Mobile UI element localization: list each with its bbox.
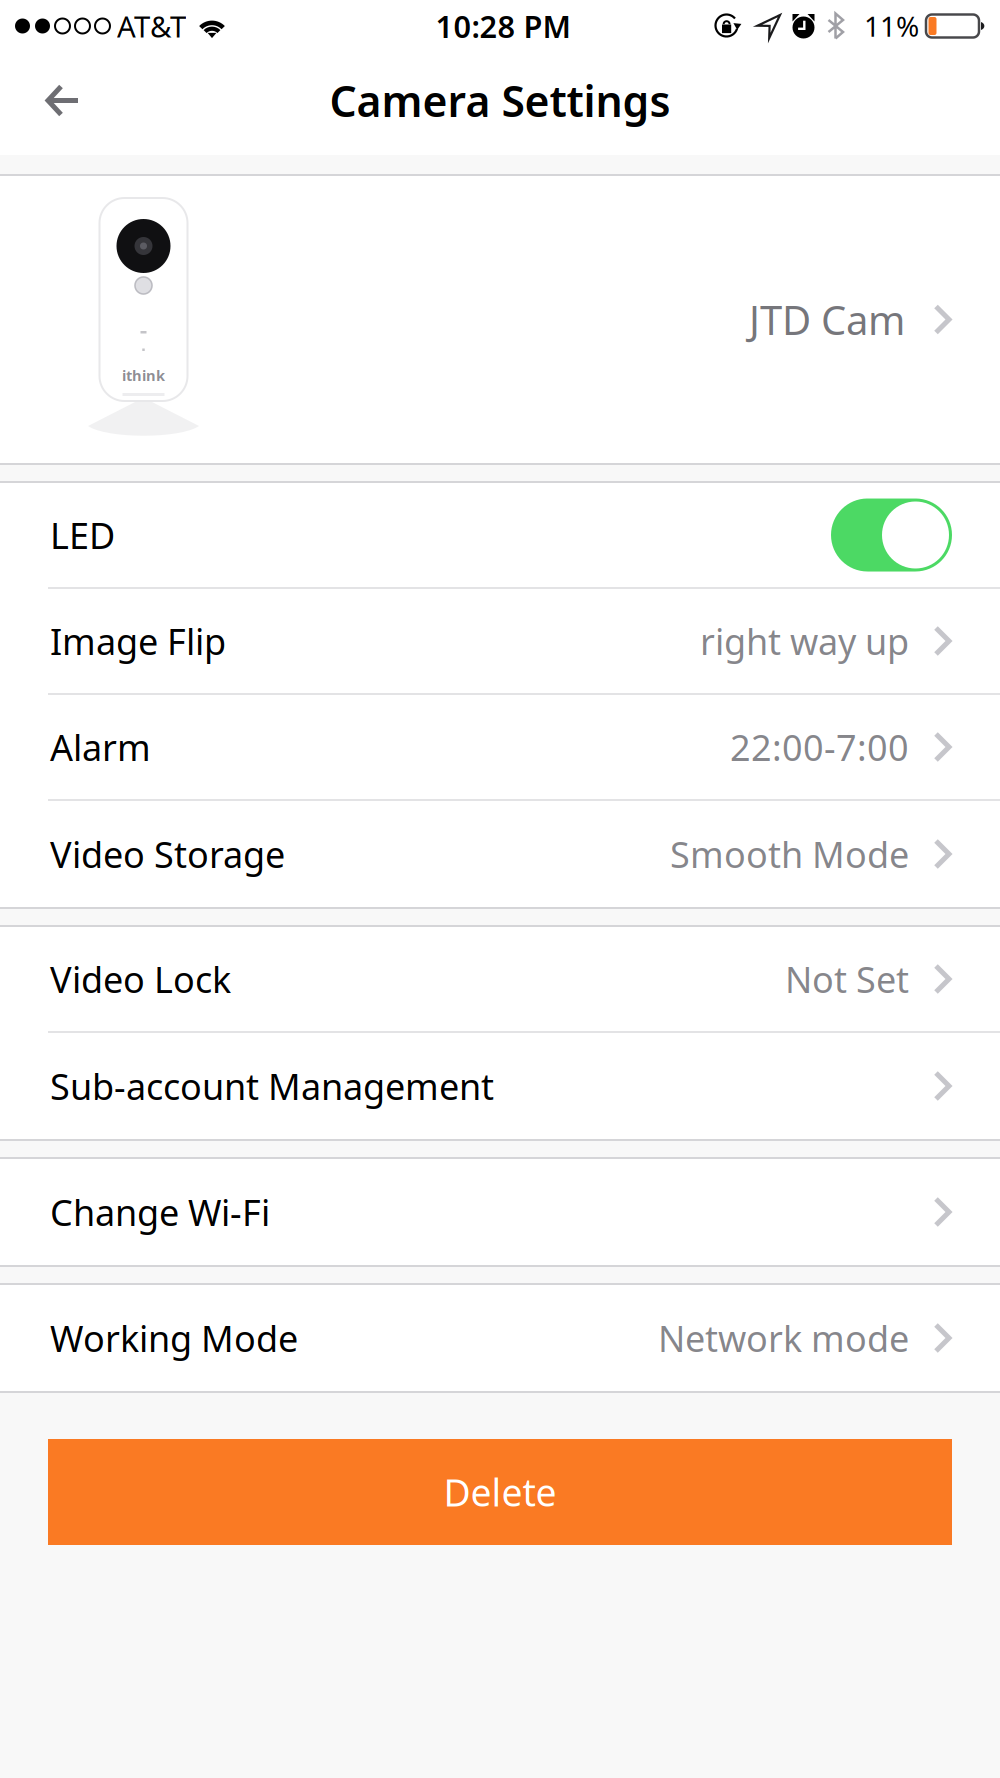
- staticText: Working Mode: [50, 1314, 298, 1362]
- staticText: Change Wi-Fi: [50, 1188, 270, 1236]
- button[interactable]: LED on: [831, 498, 952, 571]
- staticText: right way up: [700, 617, 909, 665]
- staticText: Camera Settings: [329, 72, 670, 129]
- staticText: Smooth Mode: [670, 830, 909, 878]
- staticText: LED: [50, 511, 115, 559]
- button[interactable]: ithink: [0, 176, 1000, 463]
- button[interactable]: Sub-account Management: [0, 1033, 1000, 1139]
- staticText: Image Flip: [50, 617, 226, 665]
- staticText: JTD Cam: [749, 293, 905, 346]
- staticText: Not Set: [785, 955, 909, 1003]
- staticText: AT&T: [117, 6, 186, 45]
- button[interactable]: Video Lock: [0, 927, 1000, 1033]
- button[interactable]: Back: [0, 52, 104, 155]
- staticText: Sub-account Management: [50, 1062, 494, 1110]
- staticText: Network mode: [658, 1314, 909, 1362]
- button[interactable]: Alarm: [0, 695, 1000, 801]
- button[interactable]: Delete: [48, 1439, 952, 1545]
- staticText: 22:00-7:00: [730, 723, 909, 771]
- button[interactable]: Working Mode: [0, 1285, 1000, 1391]
- button[interactable]: Change Wi-Fi: [0, 1159, 1000, 1265]
- button[interactable]: Image Flip: [0, 589, 1000, 695]
- staticText: Delete: [443, 1467, 556, 1517]
- staticText: Video Lock: [50, 955, 231, 1003]
- staticText: Alarm: [50, 723, 151, 771]
- button[interactable]: Video Storage: [0, 801, 1000, 907]
- staticText: Video Storage: [50, 830, 285, 878]
- staticText: ithink: [122, 365, 165, 385]
- staticText: 10:28 PM: [435, 6, 570, 46]
- staticText: 11%: [864, 7, 919, 45]
